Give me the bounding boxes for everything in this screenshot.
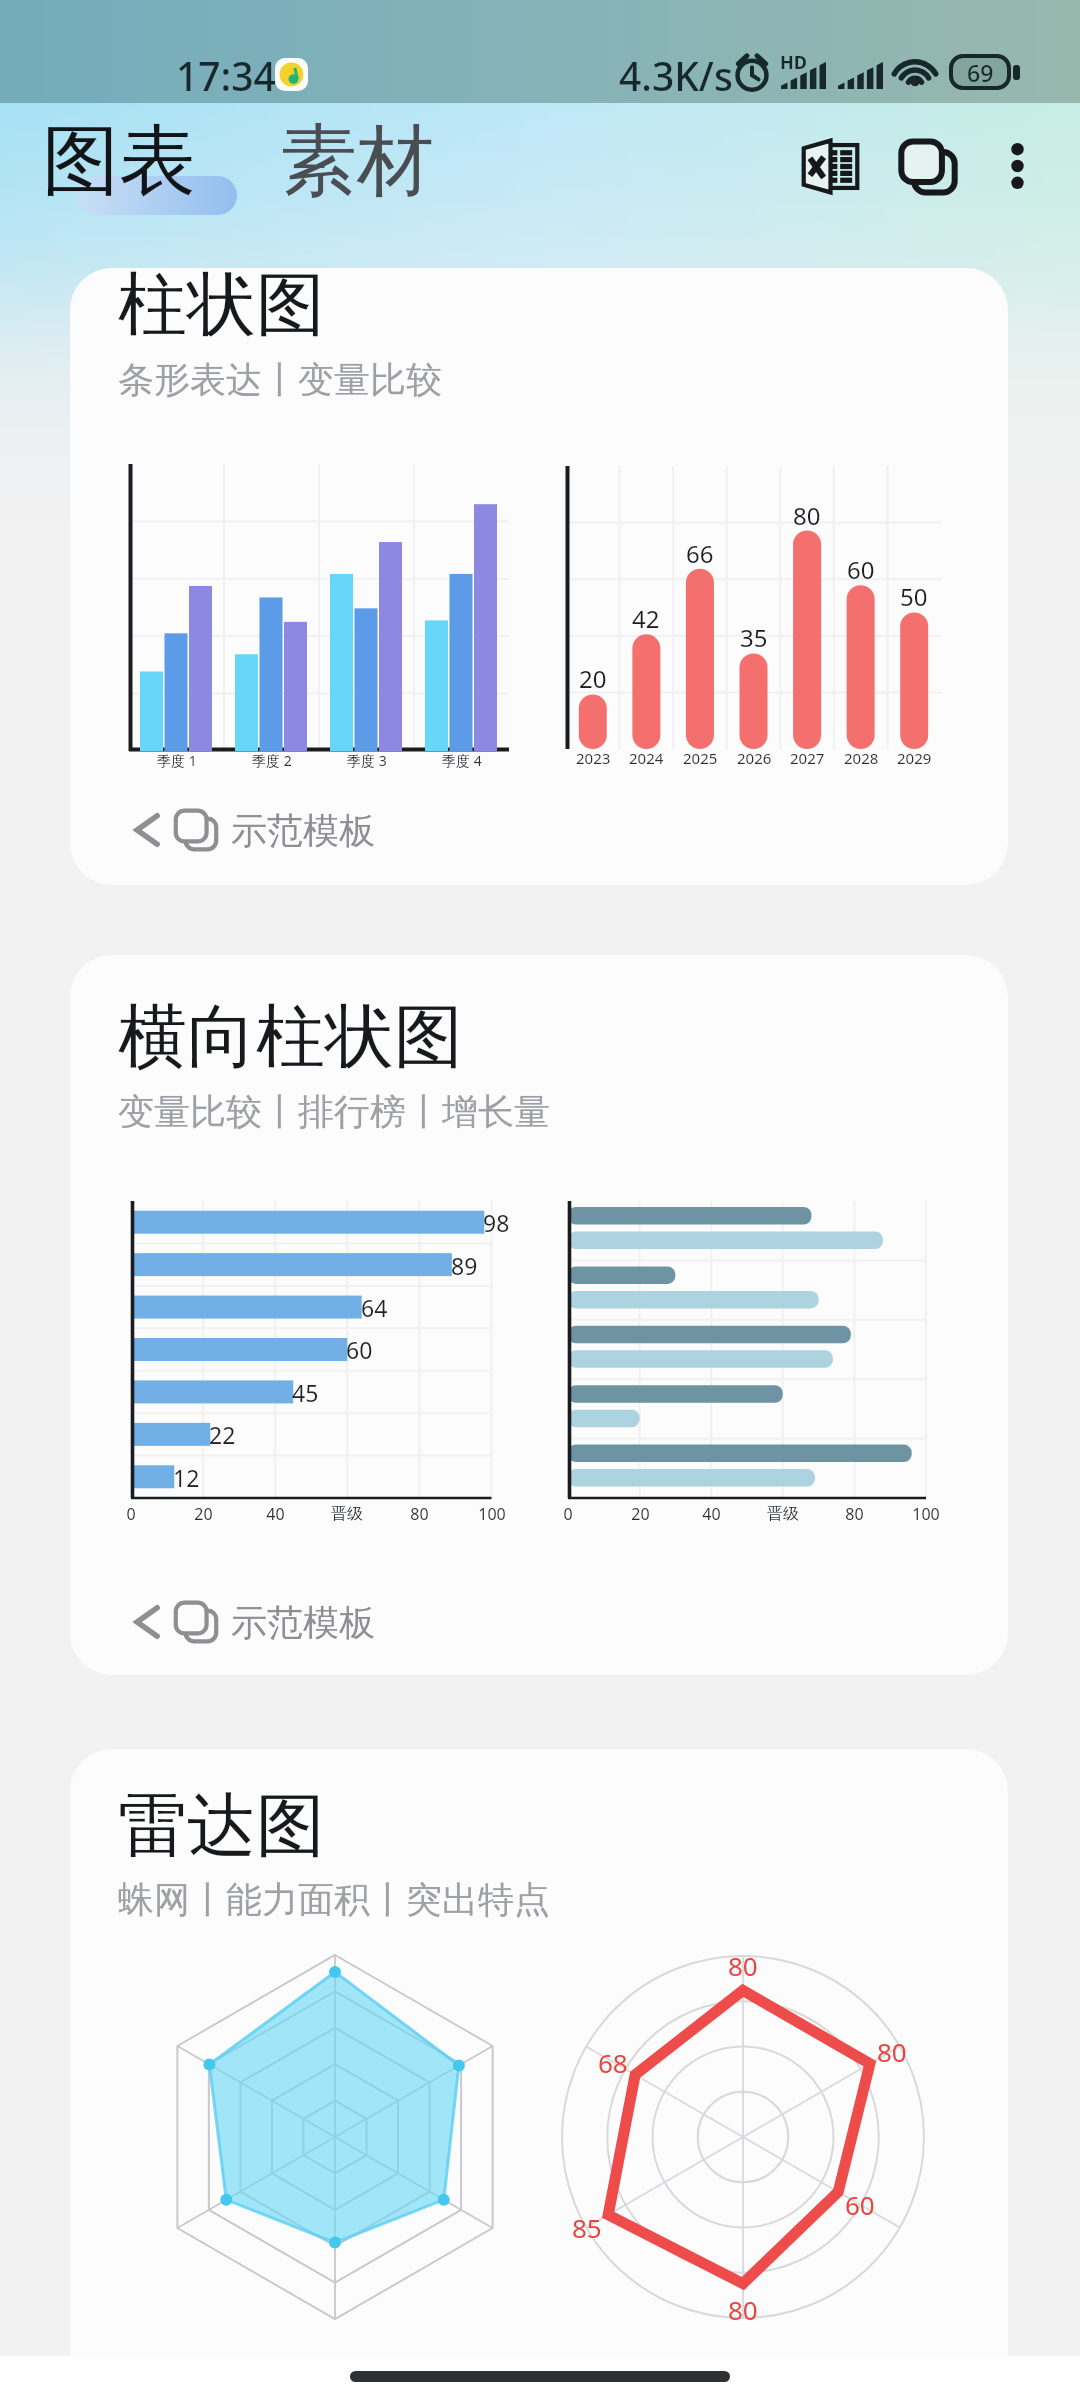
button[interactable]: 示范模板 [130,1592,375,1652]
staticText: 20 [194,1503,213,1525]
staticText: 图表 [42,113,196,210]
staticText: 68 [598,2045,628,2080]
button[interactable]: 素材 [272,109,432,219]
staticText: 2029 [897,748,932,768]
staticText: 2027 [790,748,825,768]
staticText: 12 [173,1462,200,1493]
staticText: 示范模板 [231,1600,375,1645]
staticText: 季度 3 [347,751,387,770]
staticText: 变量比较丨排行榜丨增长量 [118,1089,550,1134]
staticText: 80 [410,1503,429,1525]
staticText: 42 [632,602,660,635]
staticText: 季度 1 [157,751,197,770]
staticText: 0 [126,1503,136,1525]
staticText: 98 [483,1207,510,1238]
staticText: 17:34 [176,49,276,102]
staticText: HD [780,50,807,75]
staticText: 45 [292,1377,319,1408]
staticText: 40 [266,1503,285,1525]
button[interactable]: 横向柱状图 [70,955,1008,1675]
staticText: 季度 2 [252,751,292,770]
staticText: 柱状图 [118,268,325,349]
staticText: 22 [209,1419,236,1450]
staticText: 2028 [844,748,879,768]
staticText: 50 [900,580,928,613]
staticText: 2026 [737,748,772,768]
button[interactable]: 示范模板 [130,800,375,860]
staticText: 80 [877,2034,907,2069]
button[interactable]: 柱状图 [70,268,1008,885]
staticText: 晋级 [331,1504,363,1524]
button[interactable]: 雷达图 [70,1749,1008,2399]
staticText: 80 [728,1948,758,1983]
staticText: 69 [967,57,994,88]
staticText: 横向柱状图 [118,994,463,1081]
staticText: 示范模板 [231,808,375,853]
staticText: 蛛网丨能力面积丨突出特点 [118,1877,550,1922]
staticText: 100 [478,1503,506,1525]
staticText: 0 [563,1503,573,1525]
staticText: 60 [845,2187,875,2222]
button[interactable]: 图表 [34,109,194,219]
staticText: 4.3K/s [619,49,733,102]
button[interactable]: More options [972,121,1062,211]
staticText: 60 [346,1334,373,1365]
staticText: 100 [912,1503,940,1525]
staticText: 20 [579,662,607,695]
staticText: 条形表达丨变量比较 [118,357,442,402]
staticText: 60 [847,553,875,586]
staticText: 64 [361,1292,388,1323]
staticText: 80 [845,1503,864,1525]
button[interactable]: Export to Excel [785,121,875,211]
staticText: 2024 [629,748,664,768]
staticText: 80 [793,499,821,532]
staticText: 2025 [683,748,718,768]
staticText: 40 [702,1503,721,1525]
staticText: 80 [728,2292,758,2327]
staticText: 85 [572,2210,602,2245]
staticText: 2023 [576,748,611,768]
staticText: 晋级 [767,1504,799,1524]
button[interactable]: Templates [883,122,973,212]
staticText: 66 [686,537,714,570]
staticText: 素材 [280,113,434,210]
staticText: 雷达图 [118,1783,325,1870]
staticText: 35 [740,621,768,654]
staticText: 89 [451,1250,478,1281]
staticText: 季度 4 [442,751,482,770]
staticText: 20 [631,1503,650,1525]
